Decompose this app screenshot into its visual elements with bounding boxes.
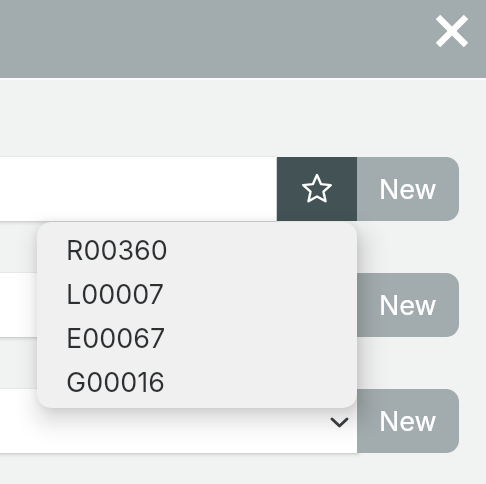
staticText: New	[379, 405, 437, 438]
staticText: L00007	[66, 278, 165, 311]
button[interactable]	[0, 389, 357, 453]
staticText: E00067	[66, 322, 166, 355]
staticText: G00016	[66, 366, 165, 399]
button[interactable]: New	[357, 157, 459, 221]
button[interactable]: Close	[429, 8, 474, 53]
button[interactable]: G00016	[37, 360, 357, 404]
staticText: R00360	[66, 234, 168, 267]
button[interactable]: New	[357, 273, 459, 337]
button[interactable]: New	[357, 389, 459, 453]
button[interactable]: Expand dropdown	[319, 389, 359, 453]
button[interactable]: Favourite	[277, 157, 357, 221]
button[interactable]	[0, 273, 276, 337]
button[interactable]: E00067	[37, 316, 357, 360]
button[interactable]: R00360	[37, 228, 357, 272]
button[interactable]: L00007	[37, 272, 357, 316]
staticText: New	[379, 173, 437, 206]
staticText: New	[379, 289, 437, 322]
